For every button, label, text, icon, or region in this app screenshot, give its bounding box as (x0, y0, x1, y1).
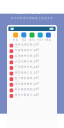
staticText: 合同附件扫描.pdf (15, 54, 39, 57)
staticText: 2.4 MB (15, 47, 19, 48)
staticText: 测试报告汇总.pdf (15, 71, 39, 74)
button[interactable]: 微信 (28, 32, 36, 41)
button[interactable]: 财务预算明细.pdf (7, 87, 57, 93)
button[interactable]: 会议纪要记录.pdf (7, 59, 57, 65)
staticText: 财务预算明细.pdf (15, 87, 39, 91)
staticText: 钉钉 (37, 38, 43, 41)
staticText: 客户资料清单.pdf (15, 76, 39, 80)
button[interactable]: 网盘 (44, 32, 52, 41)
staticText: 1.1 MB (15, 52, 19, 54)
staticText: 会议纪要记录.pdf (15, 59, 39, 63)
button[interactable]: 钉钉 (36, 32, 44, 41)
staticText: 1.8 MB (15, 91, 19, 93)
button[interactable]: 客户资料清单.pdf (7, 76, 57, 82)
button[interactable]: 产品需求文档.pdf (7, 65, 57, 71)
staticText: 95 KB (15, 80, 19, 82)
staticText: 5.6 MB (15, 86, 19, 88)
staticText: 项目说明文档.pdf (15, 43, 39, 46)
staticText: 从下列应用中选择要上传的文件 (11, 16, 53, 20)
button[interactable]: QQ (20, 32, 28, 41)
button[interactable]: 技术方案设计.pdf (7, 93, 57, 99)
button[interactable]: 年度报表统计.pdf (7, 48, 57, 54)
button[interactable]: 测试报告汇总.pdf (7, 71, 57, 76)
staticText: 培训课件材料.pdf (15, 82, 39, 85)
staticText: 选择文件 (16, 5, 48, 15)
button[interactable]: 合同附件扫描.pdf (7, 54, 57, 59)
button[interactable]: 本机 (11, 32, 20, 41)
button[interactable]: 培训课件材料.pdf (7, 82, 57, 87)
staticText: 410 KB (15, 63, 20, 65)
staticText: 网盘 (45, 38, 51, 41)
staticText: 本机 (13, 38, 19, 41)
staticText: 年度报表统计.pdf (15, 48, 39, 52)
staticText: 720 KB (15, 75, 20, 76)
button[interactable]: 项目说明文档.pdf (7, 43, 57, 48)
staticText: 技术方案设计.pdf (15, 93, 39, 97)
staticText: 产品需求文档.pdf (15, 65, 39, 69)
staticText: 微信 (29, 38, 35, 41)
staticText: QQ (22, 38, 26, 41)
